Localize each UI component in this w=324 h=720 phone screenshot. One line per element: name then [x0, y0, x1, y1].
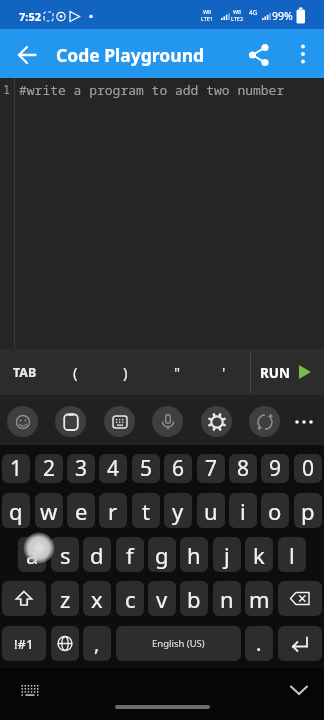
- staticText: (: [73, 362, 78, 382]
- staticText: l: [289, 540, 295, 570]
- button[interactable]: n: [213, 581, 241, 616]
- button[interactable]: g: [148, 537, 176, 572]
- staticText: ): [123, 362, 128, 382]
- button[interactable]: t: [132, 493, 160, 528]
- button[interactable]: 9: [261, 454, 289, 483]
- staticText: q: [9, 496, 23, 526]
- staticText: p: [301, 496, 315, 526]
- button[interactable]: s: [51, 537, 79, 572]
- button[interactable]: RUN: [256, 349, 318, 395]
- button[interactable]: (: [60, 349, 90, 395]
- button[interactable]: a: [18, 537, 46, 572]
- staticText: y: [172, 496, 184, 526]
- staticText: a: [26, 540, 39, 570]
- button[interactable]: [249, 406, 280, 437]
- button[interactable]: j: [213, 537, 241, 572]
- button[interactable]: [286, 37, 320, 71]
- button[interactable]: 8: [229, 454, 257, 483]
- staticText: 5: [140, 454, 153, 483]
- button[interactable]: ': [209, 349, 239, 395]
- staticText: k: [253, 540, 265, 570]
- staticText: ,: [94, 630, 100, 657]
- button[interactable]: u: [197, 493, 225, 528]
- staticText: m: [249, 584, 270, 614]
- button[interactable]: q: [2, 493, 30, 528]
- staticText: W6: [233, 8, 242, 15]
- button[interactable]: [241, 37, 277, 73]
- button[interactable]: 6: [164, 454, 192, 483]
- button[interactable]: p: [294, 493, 322, 528]
- button[interactable]: [289, 407, 319, 437]
- button[interactable]: [201, 406, 232, 437]
- staticText: 1: [3, 81, 11, 97]
- staticText: u: [204, 496, 218, 526]
- button[interactable]: [278, 626, 322, 661]
- button[interactable]: 0: [294, 454, 322, 483]
- staticText: 4G: [249, 8, 258, 17]
- button[interactable]: [281, 672, 317, 708]
- button[interactable]: k: [245, 537, 273, 572]
- button[interactable]: English (US): [116, 626, 241, 661]
- button[interactable]: [55, 406, 86, 437]
- staticText: 1: [10, 454, 23, 483]
- staticText: 9: [269, 454, 282, 483]
- staticText: d: [90, 540, 104, 570]
- button[interactable]: 1: [2, 454, 30, 483]
- staticText: c: [125, 584, 136, 614]
- button[interactable]: i: [229, 493, 257, 528]
- staticText: o: [268, 496, 282, 526]
- staticText: 3: [75, 454, 88, 483]
- staticText: h: [187, 540, 201, 570]
- button[interactable]: TAB: [5, 349, 45, 395]
- button[interactable]: l: [278, 537, 306, 572]
- staticText: s: [60, 540, 71, 570]
- button[interactable]: 2: [35, 454, 63, 483]
- button[interactable]: h: [180, 537, 208, 572]
- button[interactable]: d: [83, 537, 111, 572]
- staticText: .: [256, 630, 262, 657]
- staticText: g: [155, 540, 169, 570]
- button[interactable]: x: [83, 581, 111, 616]
- button[interactable]: [104, 406, 135, 437]
- button[interactable]: o: [261, 493, 289, 528]
- button[interactable]: 4: [99, 454, 127, 483]
- staticText: v: [156, 584, 168, 614]
- button[interactable]: [152, 406, 183, 437]
- button[interactable]: f: [116, 537, 144, 572]
- button[interactable]: [2, 581, 46, 616]
- staticText: x: [91, 584, 103, 614]
- staticText: r: [108, 496, 118, 526]
- staticText: 8: [237, 454, 250, 483]
- staticText: 2: [43, 454, 56, 483]
- button[interactable]: ,: [83, 626, 111, 661]
- button[interactable]: [278, 581, 322, 616]
- button[interactable]: y: [164, 493, 192, 528]
- button[interactable]: z: [51, 581, 79, 616]
- button[interactable]: 5: [132, 454, 160, 483]
- staticText: j: [224, 540, 230, 570]
- button[interactable]: [51, 626, 79, 661]
- button[interactable]: b: [180, 581, 208, 616]
- staticText: Code Playground: [56, 43, 205, 67]
- staticText: #write a program to add two number: [19, 81, 285, 99]
- button[interactable]: e: [67, 493, 95, 528]
- button[interactable]: [12, 674, 48, 710]
- staticText: English (US): [152, 637, 205, 650]
- button[interactable]: r: [99, 493, 127, 528]
- staticText: ": [174, 362, 181, 382]
- staticText: LTE1: [201, 15, 214, 22]
- button[interactable]: ): [110, 349, 140, 395]
- button[interactable]: !#1: [2, 626, 46, 661]
- button[interactable]: .: [245, 626, 273, 661]
- button[interactable]: ": [162, 349, 192, 395]
- button[interactable]: c: [116, 581, 144, 616]
- button[interactable]: 3: [67, 454, 95, 483]
- button[interactable]: [7, 406, 38, 437]
- staticText: i: [240, 496, 246, 526]
- button[interactable]: m: [245, 581, 273, 616]
- button[interactable]: v: [148, 581, 176, 616]
- button[interactable]: 7: [197, 454, 225, 483]
- button[interactable]: [8, 37, 46, 75]
- staticText: W6: [203, 8, 212, 15]
- button[interactable]: w: [35, 493, 63, 528]
